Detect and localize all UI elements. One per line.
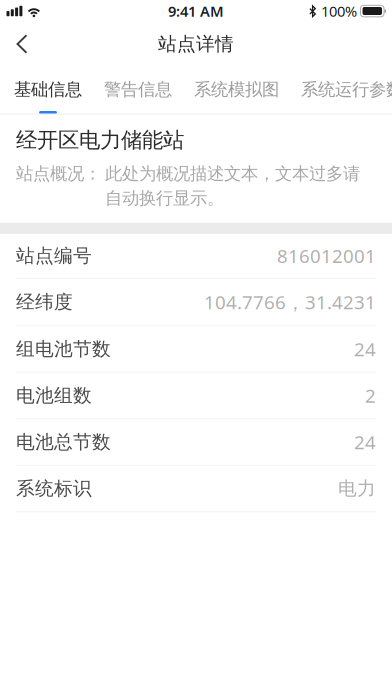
staticText: 基础信息 <box>14 79 82 100</box>
staticText: 24 <box>354 337 376 361</box>
button[interactable]: 电池组数 <box>0 373 392 419</box>
staticText: 电池组数 <box>16 384 92 407</box>
staticText: 816012001 <box>277 243 376 268</box>
staticText: 24 <box>354 430 376 454</box>
staticText: 站点概况： <box>16 163 101 184</box>
staticText: 2 <box>365 383 376 408</box>
staticText: 此处为概况描述文本，文本过多请 <box>105 163 360 184</box>
staticText: 100% <box>321 1 357 21</box>
staticText: 9:41 AM <box>168 1 224 21</box>
staticText: 电力 <box>338 477 376 500</box>
staticText: 系统运行参数 <box>301 79 392 100</box>
button[interactable]: 基础信息 <box>3 66 93 115</box>
staticText: 系统标识 <box>16 477 92 500</box>
staticText: 104.7766，31.4231 <box>204 290 376 314</box>
staticText: 站点详情 <box>158 32 234 55</box>
staticText: 站点编号 <box>16 244 92 267</box>
button[interactable]: Back <box>0 22 42 66</box>
button[interactable]: 组电池节数 <box>0 326 392 373</box>
staticText: 经纬度 <box>16 291 73 313</box>
staticText: 系统模拟图 <box>194 79 279 100</box>
staticText: 自动换行显示。 <box>105 187 224 209</box>
button[interactable]: 经纬度 <box>0 279 392 326</box>
staticText: 警告信息 <box>104 79 172 100</box>
button[interactable]: 系统标识 <box>0 466 392 512</box>
button[interactable]: 警告信息 <box>93 66 183 115</box>
button[interactable]: 系统运行参数 <box>290 66 392 115</box>
button[interactable]: 电池总节数 <box>0 419 392 466</box>
staticText: 经开区电力储能站 <box>16 127 184 153</box>
staticText: 组电池节数 <box>16 338 111 360</box>
staticText: 电池总节数 <box>16 431 111 453</box>
button[interactable]: 系统模拟图 <box>183 66 290 115</box>
button[interactable]: 站点编号 <box>0 234 392 279</box>
